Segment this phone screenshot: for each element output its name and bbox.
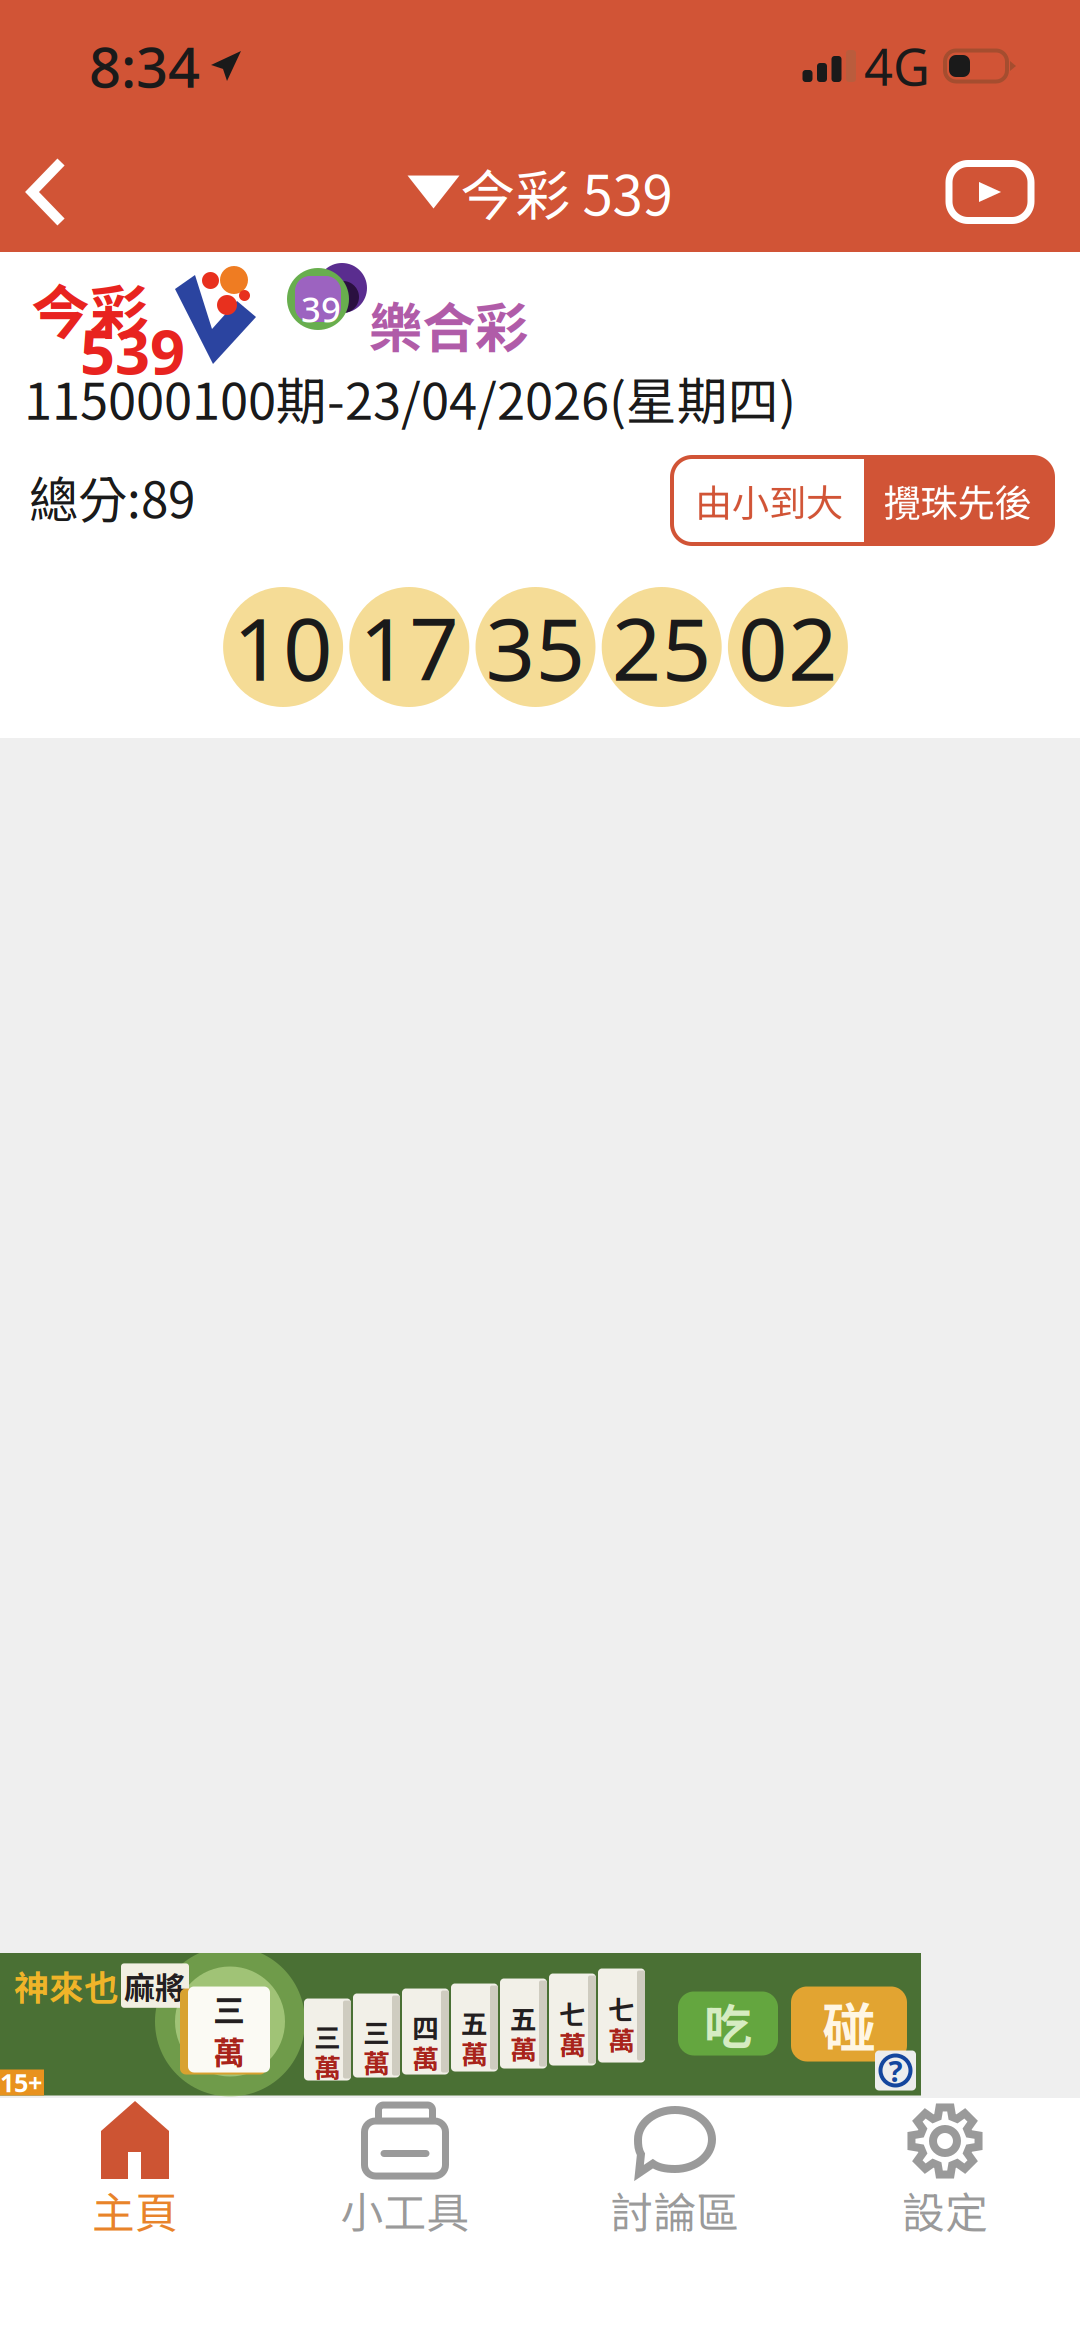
staticText: 115000100期-23/04/2026(星期四) <box>24 361 796 434</box>
button[interactable]: Videos <box>889 132 1080 252</box>
staticText: 五 <box>461 2003 488 2041</box>
staticText: 萬 <box>412 2038 439 2077</box>
staticText: 七 <box>559 1994 586 2032</box>
button[interactable]: 由小到大 <box>674 459 864 542</box>
staticText: 三 <box>213 1985 245 2031</box>
button[interactable]: 攪珠先後 <box>864 459 1051 542</box>
staticText: 碰 <box>822 1985 875 2063</box>
staticText: 主頁 <box>92 2179 178 2241</box>
staticText: 總分:89 <box>29 461 195 532</box>
staticText: 8:34 <box>89 29 200 103</box>
staticText: 539 <box>80 310 185 391</box>
staticText: 35 <box>485 589 585 705</box>
staticText: 4G <box>864 32 930 100</box>
staticText: 02 <box>738 589 838 705</box>
button[interactable]: 主頁 <box>0 2098 270 2240</box>
staticText: 39 <box>301 286 341 332</box>
staticText: 三 <box>363 2012 390 2051</box>
staticText: 三 <box>314 2016 341 2055</box>
staticText: 萬 <box>213 2027 245 2074</box>
staticText: 15+ <box>0 2066 42 2099</box>
staticText: 今彩 <box>31 266 149 351</box>
staticText: 四 <box>412 2007 439 2046</box>
staticText: 五 <box>510 1998 537 2037</box>
staticText: 萬 <box>461 2033 488 2072</box>
staticText: 萬 <box>608 2020 635 2058</box>
staticText: 吃 <box>704 1989 752 2058</box>
staticText: 設定 <box>902 2179 988 2241</box>
staticText: 神來也 <box>14 1960 119 2011</box>
staticText: 17 <box>359 589 459 705</box>
button[interactable]: 小工具 <box>270 2098 540 2240</box>
staticText: 萬 <box>559 2024 586 2063</box>
staticText: 25 <box>612 589 712 705</box>
staticText: 攪珠先後 <box>883 473 1031 528</box>
staticText: 萬 <box>510 2029 537 2067</box>
button[interactable]: 討論區 <box>540 2098 810 2240</box>
staticText: 由小到大 <box>695 473 843 528</box>
staticText: 七 <box>608 1989 635 2028</box>
button[interactable]: Advertisement <box>0 1953 921 2098</box>
staticText: 討論區 <box>610 2179 739 2241</box>
staticText: 萬 <box>314 2047 341 2086</box>
button[interactable]: Back <box>0 132 127 252</box>
staticText: 萬 <box>363 2043 390 2081</box>
staticText: ? <box>888 2051 902 2090</box>
staticText: 小工具 <box>340 2179 469 2241</box>
staticText: 樂合彩 <box>369 285 528 363</box>
staticText: 今彩 539 <box>460 152 672 232</box>
staticText: 10 <box>233 589 333 705</box>
button[interactable]: 設定 <box>810 2098 1080 2240</box>
staticText: 麻將 <box>124 1963 186 2008</box>
